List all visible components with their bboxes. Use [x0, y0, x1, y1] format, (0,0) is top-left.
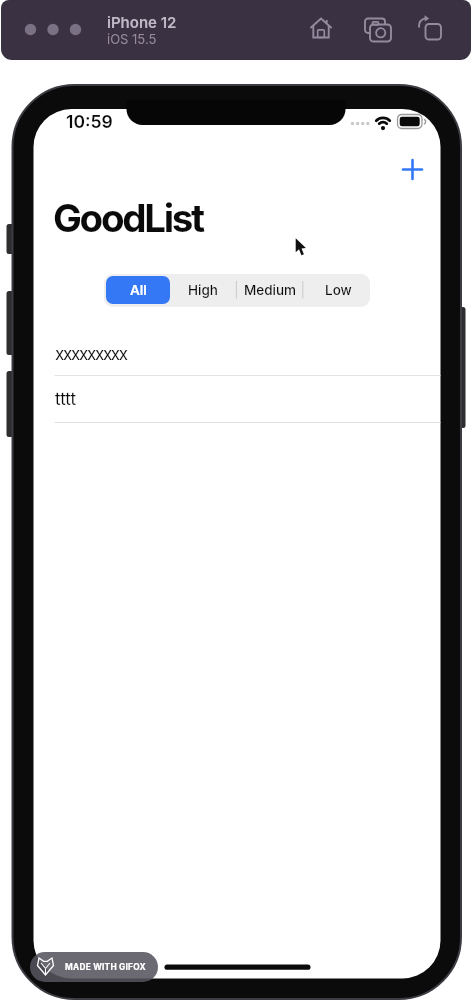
button[interactable] — [46, 23, 59, 36]
button[interactable] — [358, 12, 396, 46]
staticText: GoodList — [53, 195, 203, 242]
staticText: 10:59 — [66, 111, 113, 132]
staticText: Low — [325, 282, 352, 298]
button[interactable] — [411, 12, 445, 46]
button[interactable] — [69, 23, 82, 36]
button[interactable] — [24, 23, 37, 36]
button[interactable] — [170, 274, 236, 306]
button[interactable]: tttt — [34, 376, 440, 423]
button[interactable] — [303, 274, 369, 306]
staticText: xxxxxxxxx — [55, 344, 127, 365]
staticText: tttt — [55, 389, 77, 410]
button[interactable] — [106, 276, 170, 304]
staticText: iPhone 12 — [107, 13, 177, 31]
button[interactable] — [237, 274, 303, 306]
staticText: All — [130, 282, 147, 298]
staticText: Medium — [244, 282, 297, 298]
staticText: High — [188, 282, 218, 298]
button[interactable]: xxxxxxxxx — [34, 333, 440, 376]
staticText: iOS 15.5 — [107, 31, 157, 47]
button[interactable] — [397, 154, 428, 185]
staticText: MADE WITH GIFOX — [65, 962, 146, 972]
button[interactable] — [306, 13, 336, 45]
